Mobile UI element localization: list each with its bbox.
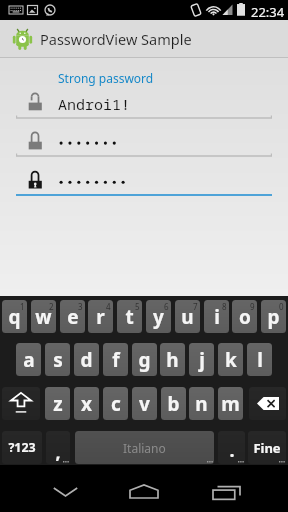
button[interactable]: s — [45, 343, 70, 376]
staticText: Italiano — [123, 440, 166, 456]
staticText: e — [67, 304, 79, 330]
staticText: h — [166, 347, 179, 373]
button[interactable]: p — [261, 300, 286, 333]
button[interactable]: , — [46, 431, 70, 464]
staticText: , — [55, 440, 61, 464]
staticText: . — [229, 438, 235, 463]
button[interactable]: u — [175, 300, 200, 333]
staticText: u — [181, 304, 194, 330]
staticText: v — [139, 391, 150, 417]
button[interactable]: q — [2, 300, 27, 333]
button[interactable]: e — [60, 300, 85, 333]
staticText: 3 — [78, 301, 83, 312]
staticText: d — [80, 347, 93, 373]
staticText: b — [167, 391, 180, 417]
button[interactable]: c — [103, 387, 128, 420]
staticText: p — [267, 304, 280, 330]
staticText: ?123 — [8, 439, 36, 456]
staticText: x — [81, 391, 92, 417]
button[interactable] — [0, 126, 288, 158]
button[interactable]: PasswordView Sample — [0, 20, 288, 58]
button[interactable]: . — [218, 431, 245, 464]
staticText: f — [112, 347, 120, 373]
staticText: o — [239, 304, 251, 330]
staticText: s — [53, 347, 63, 373]
button[interactable]: k — [218, 343, 243, 376]
button[interactable]: Space — [75, 431, 214, 464]
button[interactable]: d — [74, 343, 99, 376]
button[interactable]: Home — [120, 468, 168, 512]
staticText: k — [225, 347, 237, 373]
staticText: 6 — [164, 301, 169, 312]
staticText: g — [138, 347, 151, 373]
staticText: 2 — [49, 301, 54, 312]
button[interactable]: x — [74, 387, 99, 420]
button[interactable]: l — [247, 343, 272, 376]
staticText: i — [214, 304, 220, 330]
button[interactable]: j — [189, 343, 214, 376]
staticText: m — [221, 391, 240, 417]
staticText: PasswordView Sample — [40, 29, 192, 49]
staticText: l — [257, 347, 263, 373]
button[interactable]: Backspace — [249, 387, 286, 420]
button[interactable]: Androi1! — [0, 88, 288, 120]
staticText: y — [153, 304, 164, 330]
staticText: 4 — [106, 301, 111, 312]
staticText: 8 — [222, 301, 227, 312]
staticText: z — [53, 391, 63, 417]
staticText: 1 — [20, 301, 25, 312]
button[interactable]: y — [146, 300, 171, 333]
staticText: r — [96, 304, 105, 330]
button[interactable]: z — [45, 387, 70, 420]
button[interactable]: o — [232, 300, 257, 333]
staticText: a — [23, 347, 35, 373]
staticText: Strong password — [58, 70, 154, 86]
button[interactable]: t — [117, 300, 142, 333]
button[interactable]: Fine — [248, 431, 286, 464]
button[interactable]: g — [132, 343, 157, 376]
staticText: n — [195, 391, 208, 417]
button[interactable]: b — [161, 387, 186, 420]
staticText: c — [111, 391, 121, 417]
button[interactable]: Shift — [2, 387, 40, 420]
button[interactable]: i — [204, 300, 229, 333]
staticText: w — [35, 304, 52, 330]
button[interactable]: n — [189, 387, 214, 420]
staticText: Fine — [253, 439, 281, 457]
button[interactable]: a — [16, 343, 41, 376]
staticText: 0 — [279, 301, 284, 312]
button[interactable]: Hide keyboard — [41, 468, 89, 512]
staticText: 5 — [135, 301, 140, 312]
staticText: 22:34 — [251, 3, 285, 21]
button[interactable]: m — [218, 387, 243, 420]
button[interactable]: w — [31, 300, 56, 333]
staticText: t — [125, 304, 134, 330]
staticText: 7 — [193, 301, 198, 312]
staticText: q — [8, 304, 21, 330]
staticText: 9 — [250, 301, 255, 312]
button[interactable]: Recent apps — [202, 468, 250, 512]
button[interactable] — [0, 165, 288, 197]
button[interactable]: r — [88, 300, 113, 333]
button[interactable]: h — [160, 343, 185, 376]
staticText: Androi1! — [58, 94, 131, 114]
button[interactable]: f — [103, 343, 128, 376]
staticText: j — [199, 347, 205, 373]
button[interactable]: ?123 — [2, 431, 42, 464]
button[interactable]: v — [132, 387, 157, 420]
